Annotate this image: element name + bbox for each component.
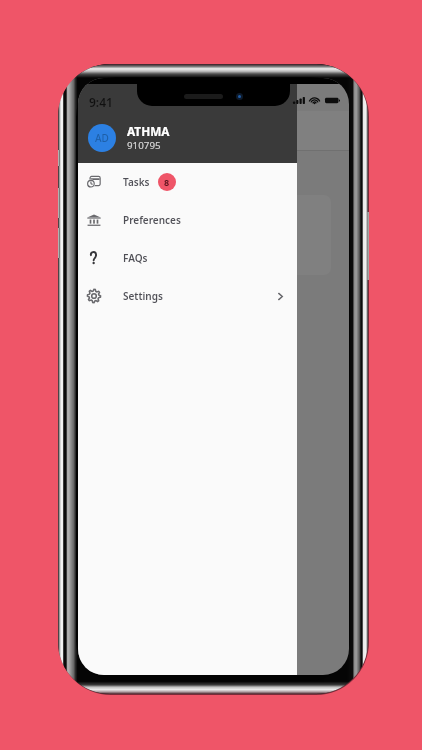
button[interactable]: Preferences bbox=[78, 201, 297, 239]
staticText: Tasks bbox=[123, 175, 150, 189]
staticText: ATHMA bbox=[127, 123, 170, 139]
staticText: 9:41 bbox=[89, 94, 113, 110]
button[interactable]: Settings bbox=[78, 277, 297, 315]
button[interactable]: FAQs bbox=[78, 239, 297, 277]
button[interactable]: Tasks bbox=[78, 163, 297, 201]
staticText: Settings bbox=[123, 289, 163, 303]
staticText: Preferences bbox=[123, 213, 181, 227]
other: Open settings bbox=[275, 291, 286, 302]
staticText: AD bbox=[95, 131, 109, 145]
staticText: 910795 bbox=[127, 139, 161, 152]
staticText: FAQs bbox=[123, 251, 148, 265]
staticText: 8 bbox=[164, 176, 170, 188]
